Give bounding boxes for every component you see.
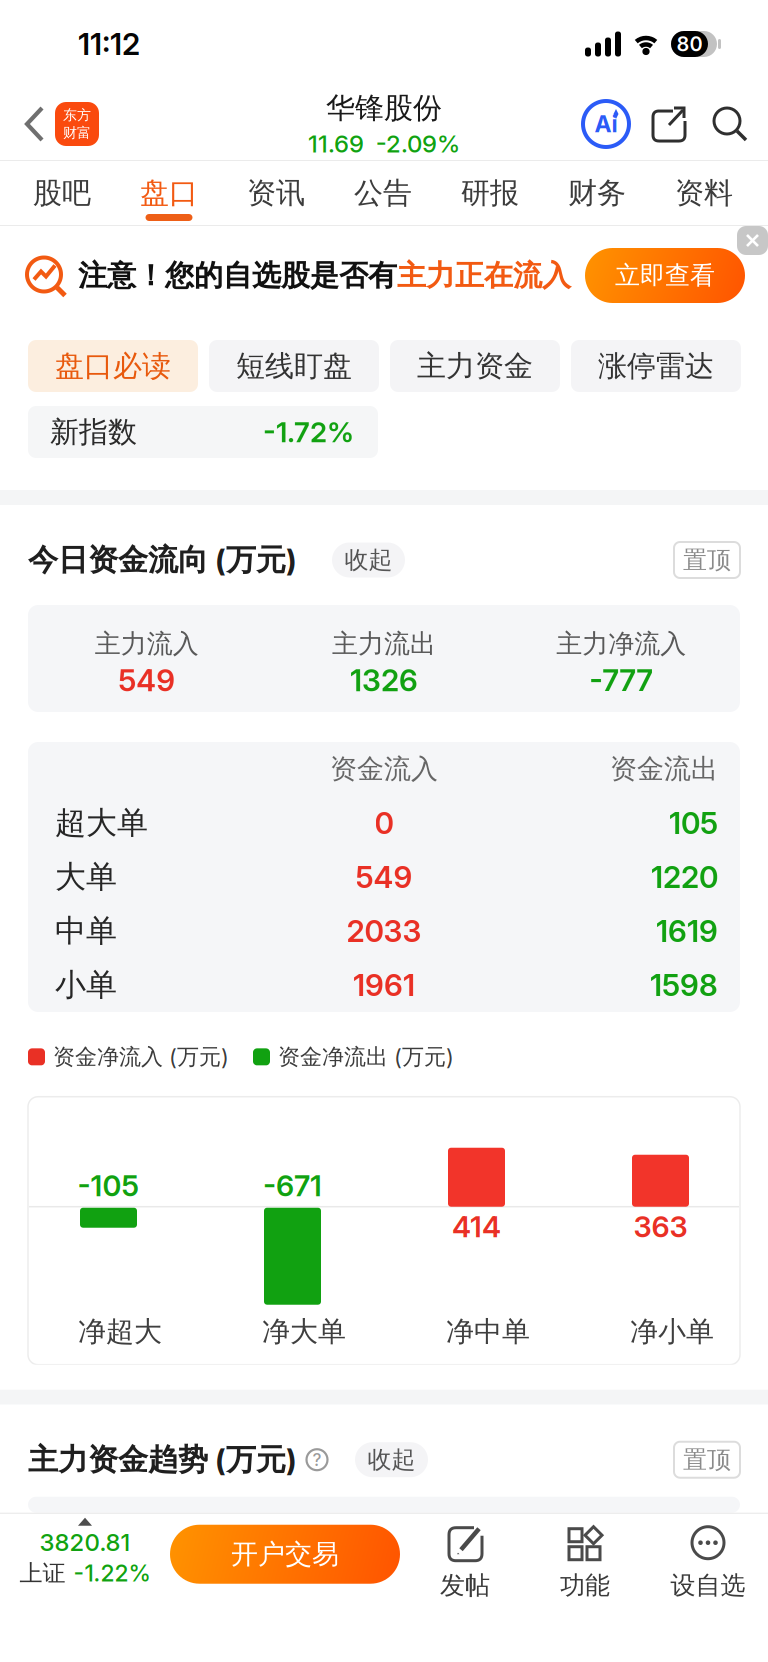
staticText: 涨停雷达	[598, 348, 714, 384]
staticText: 东方	[63, 106, 91, 124]
button[interactable]: Ai	[583, 101, 629, 147]
button[interactable]: 东方财富	[45, 102, 99, 146]
button[interactable]: 盘口必读	[28, 340, 198, 392]
staticText: 财务	[568, 175, 626, 211]
staticText: 盘口	[140, 175, 198, 211]
staticText: 105	[669, 805, 718, 841]
staticText: 研报	[461, 175, 519, 211]
staticText: 公告	[354, 175, 412, 211]
staticText: 收起	[367, 1445, 415, 1475]
staticText: -2.09%	[376, 129, 460, 158]
staticText: -671	[263, 1168, 322, 1203]
staticText: 3820.81	[39, 1528, 130, 1557]
staticText: 收起	[344, 545, 392, 575]
staticText: 资金流入	[330, 752, 438, 786]
staticText: 主力流出	[332, 627, 436, 660]
button[interactable]: 功能	[543, 1518, 627, 1601]
button[interactable]: 上证指数	[0, 1518, 170, 1588]
staticText: 设自选	[670, 1570, 745, 1601]
button[interactable]: 立即查看	[585, 248, 745, 303]
staticText: 549	[118, 662, 175, 698]
staticText: 净中单	[446, 1314, 530, 1349]
button[interactable]: 开户交易	[170, 1518, 400, 1584]
button[interactable]: 主力资金	[390, 340, 560, 392]
staticText: 414	[452, 1209, 501, 1244]
staticText: 主力资金	[417, 348, 533, 384]
button[interactable]: Share	[629, 103, 689, 145]
staticText: 注意！您的自选股是否有	[78, 257, 397, 294]
staticText: 1961	[353, 967, 415, 1003]
button[interactable]: 收起	[297, 542, 405, 577]
staticText: -105	[77, 1168, 139, 1203]
staticText: 华锋股份	[326, 90, 442, 126]
button[interactable]: 短线盯盘	[209, 340, 379, 392]
staticText: 新指数	[50, 414, 137, 450]
button[interactable]: 盘口	[135, 161, 203, 225]
staticText: -1.72%	[263, 415, 354, 449]
staticText: 小单	[55, 965, 117, 1005]
staticText: 资讯	[247, 175, 305, 211]
staticText: -777	[589, 662, 653, 698]
staticText: 立即查看	[615, 260, 715, 291]
staticText: 发帖	[440, 1570, 490, 1601]
button[interactable]: 公告	[349, 161, 417, 225]
staticText: 1220	[651, 859, 718, 895]
staticText: 2033	[346, 913, 421, 949]
staticText: 今日资金流向 (万元)	[28, 541, 297, 579]
staticText: 盘口必读	[55, 348, 171, 384]
button[interactable]: 新指数	[28, 406, 378, 458]
staticText: 1619	[656, 913, 718, 949]
staticText: 主力流入	[95, 627, 199, 660]
button[interactable]: 收起	[329, 1442, 428, 1477]
staticText: 置顶	[683, 545, 731, 575]
button[interactable]: 设自选	[660, 1518, 756, 1601]
button[interactable]: Close	[737, 226, 768, 255]
staticText: 主力正在流入	[397, 257, 571, 294]
staticText: 0	[374, 805, 393, 841]
staticText: 股吧	[33, 175, 91, 211]
button[interactable]: 置顶	[674, 1442, 768, 1478]
staticText: 11.69	[308, 129, 364, 158]
button[interactable]: 资讯	[242, 161, 310, 225]
staticText: 置顶	[683, 1445, 731, 1475]
button[interactable]: 财务	[563, 161, 631, 225]
button[interactable]: Help	[297, 1448, 329, 1472]
staticText: 资金净流出 (万元)	[278, 1043, 454, 1071]
staticText: 财富	[63, 124, 91, 142]
staticText: 549	[355, 859, 412, 895]
staticText: 1598	[650, 967, 718, 1003]
staticText: 净小单	[630, 1314, 714, 1349]
staticText: 80	[676, 32, 702, 56]
staticText: Ai	[594, 110, 617, 138]
staticText: 资料	[675, 175, 733, 211]
button[interactable]: 研报	[456, 161, 524, 225]
button[interactable]: 发帖	[423, 1518, 507, 1601]
staticText: 超大单	[55, 803, 148, 843]
staticText: 主力资金趋势 (万元)	[28, 1441, 297, 1479]
button[interactable]: 股吧	[28, 161, 96, 225]
staticText: 上证	[19, 1559, 65, 1588]
staticText: 1326	[350, 662, 418, 698]
button[interactable]: 涨停雷达	[571, 340, 741, 392]
staticText: 大单	[55, 857, 117, 897]
staticText: 短线盯盘	[236, 348, 352, 384]
staticText: ?	[312, 1449, 321, 1470]
staticText: 净超大	[78, 1314, 162, 1349]
button[interactable]: Back	[0, 106, 45, 142]
staticText: 资金流出	[610, 752, 718, 786]
staticText: 开户交易	[231, 1537, 339, 1571]
staticText: 363	[633, 1209, 687, 1244]
staticText: 中单	[55, 911, 117, 951]
staticText: -1.22%	[73, 1559, 150, 1587]
staticText: 11:12	[78, 26, 140, 62]
button[interactable]: 资料	[670, 161, 738, 225]
button[interactable]: Search	[689, 105, 768, 143]
staticText: 净大单	[262, 1314, 346, 1349]
staticText: 主力净流入	[556, 627, 686, 660]
button[interactable]: 置顶	[674, 542, 768, 578]
staticText: 资金净流入 (万元)	[53, 1043, 229, 1071]
staticText: 功能	[560, 1570, 610, 1601]
